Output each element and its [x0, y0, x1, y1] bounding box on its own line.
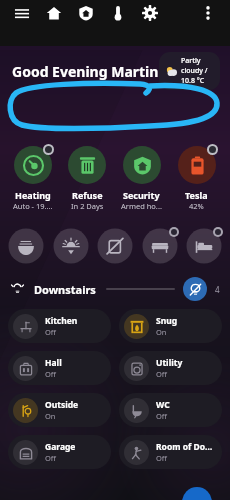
button[interactable]: Kitchen: [8, 309, 111, 343]
staticText: Outside: [45, 399, 79, 411]
staticText: Kitchen: [45, 315, 78, 327]
staticText: On: [156, 327, 167, 337]
button[interactable]: Add: [182, 487, 212, 500]
button[interactable]: Hall: [8, 351, 111, 385]
button[interactable]: Outside: [8, 393, 111, 427]
staticText: Off: [156, 411, 168, 421]
button[interactable]: Security: [114, 142, 169, 213]
staticText: Good Evening Martin: [12, 62, 159, 81]
button[interactable]: WC: [119, 393, 222, 427]
staticText: Security: [123, 189, 160, 201]
button[interactable]: Utility: [119, 351, 222, 385]
button[interactable]: Partly cloudy / 10.8 °C: [159, 52, 220, 90]
staticText: Off: [156, 453, 168, 463]
staticText: 42%: [189, 201, 204, 211]
button[interactable]: Heating: [6, 142, 60, 213]
button[interactable]: Lights off: [183, 277, 207, 301]
button[interactable]: Tesla: [169, 142, 224, 213]
button[interactable]: Menu: [9, 0, 35, 26]
staticText: Off: [45, 453, 57, 463]
staticText: Off: [45, 369, 57, 379]
staticText: Partly cloudy / 10.8 °C: [181, 56, 213, 86]
staticText: Hall: [45, 357, 62, 369]
button[interactable]: More options: [195, 0, 221, 26]
staticText: Armed ho...: [121, 201, 162, 211]
staticText: Off: [156, 369, 168, 379]
staticText: In 2 Days: [71, 201, 104, 211]
staticText: Utility: [156, 357, 183, 369]
button[interactable]: Double bed: [141, 227, 179, 265]
staticText: Refuse: [72, 189, 103, 201]
staticText: Tesla: [185, 189, 208, 201]
button[interactable]: Home: [41, 0, 67, 26]
button[interactable]: Room of Doom: [119, 435, 222, 469]
button[interactable]: Garage: [8, 435, 111, 469]
button[interactable]: Security: [73, 0, 99, 26]
staticText: Heating: [15, 189, 51, 201]
button[interactable]: Sunset: [52, 227, 90, 265]
staticText: Off: [45, 327, 57, 337]
staticText: Garage: [45, 441, 76, 453]
button[interactable]: Dining: [7, 227, 45, 265]
button[interactable]: Do not disturb: [96, 227, 134, 265]
button[interactable]: Snug: [119, 309, 222, 343]
staticText: Downstairs: [34, 282, 96, 297]
button[interactable]: Refuse: [60, 142, 114, 213]
staticText: Snug: [156, 315, 178, 327]
button[interactable]: Climate: [105, 0, 131, 26]
button[interactable]: Single bed: [185, 227, 223, 265]
staticText: Auto - 19....: [13, 201, 53, 211]
staticText: Room of Doom: [156, 441, 216, 453]
staticText: WC: [156, 399, 170, 411]
staticText: 4: [215, 284, 220, 295]
button[interactable]: Settings: [137, 0, 163, 26]
staticText: On: [45, 411, 56, 421]
